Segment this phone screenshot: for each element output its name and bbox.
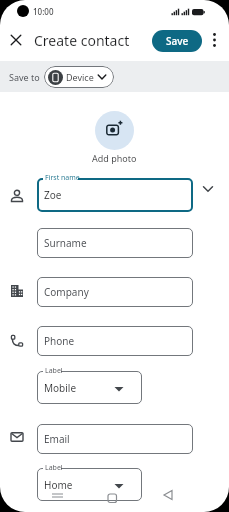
staticText: Zoe [44,188,62,202]
staticText: Email [44,432,70,446]
staticText: Surname [44,236,87,250]
button[interactable] [103,489,123,505]
button[interactable] [37,178,193,212]
staticText: First name [45,173,80,183]
staticText: Label [45,366,63,376]
staticText: Company [44,285,89,299]
button[interactable] [37,326,193,356]
button[interactable] [37,468,142,501]
staticText: Label [45,463,63,473]
button[interactable] [48,489,68,505]
staticText: Mobile [44,381,77,395]
button[interactable] [37,228,193,258]
staticText: Add photo [92,152,137,164]
button[interactable]: Save [152,30,202,52]
staticText: Phone [44,334,75,348]
staticText: Save to [9,71,40,83]
button[interactable] [37,371,142,404]
button[interactable] [159,489,179,505]
staticText: Save [166,34,189,48]
button[interactable] [37,424,193,454]
button[interactable] [199,180,218,199]
staticText: 10:00 [33,6,54,17]
button[interactable] [6,30,26,50]
staticText: Create contact [34,31,130,50]
button[interactable] [44,66,114,88]
staticText: Home [44,478,73,492]
button[interactable] [95,111,134,150]
button[interactable] [206,29,223,52]
staticText: Device [66,71,94,83]
button[interactable] [37,277,193,307]
